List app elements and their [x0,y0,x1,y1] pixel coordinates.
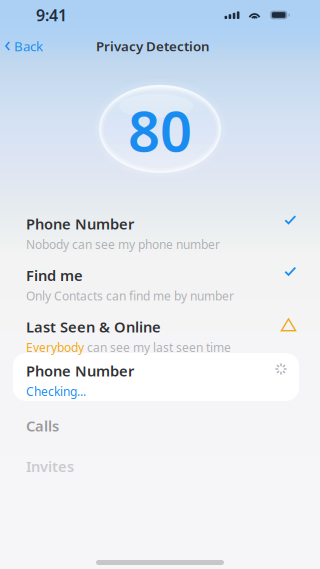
button[interactable]: Calls [0,404,320,447]
staticText: Calls [26,416,59,435]
staticText: Privacy Detection [96,37,210,55]
button[interactable]: Phone Number [0,202,320,264]
staticText: Checking... [26,383,86,399]
staticText: Last Seen & Online [26,317,161,336]
staticText: Back [14,37,43,55]
button[interactable]: Find me [0,253,320,316]
staticText: 9:41 [36,4,67,26]
button[interactable]: Last Seen & Online [0,305,320,367]
staticText: Find me [26,265,83,285]
staticText: Nobody can see my phone number [26,236,220,252]
staticText: 80 [128,93,192,167]
staticText: Phone Number [26,214,134,233]
staticText: Everybody [26,339,84,355]
button[interactable]: Back [0,33,51,59]
button[interactable]: Phone Number [0,349,312,411]
staticText: Invites [26,456,74,476]
staticText: can see my last seen time [87,339,231,355]
button[interactable]: Invites [0,444,320,488]
staticText: Phone Number [26,361,134,380]
staticText: Only Contacts can find me by number [26,288,234,304]
